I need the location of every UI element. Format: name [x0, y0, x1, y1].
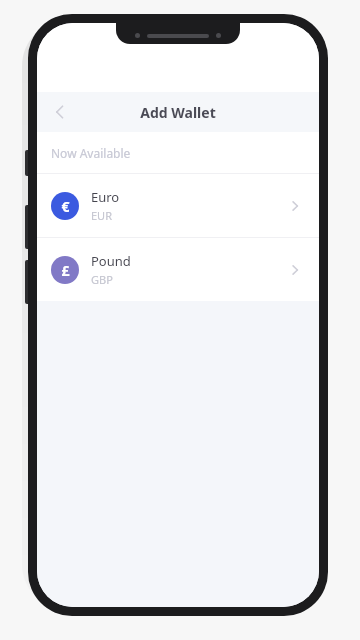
staticText: €	[61, 197, 70, 216]
button[interactable]: €	[37, 174, 319, 237]
staticText: Add Wallet	[140, 103, 216, 122]
staticText: £	[61, 261, 70, 280]
staticText: Now Available	[51, 145, 131, 161]
button[interactable]: £	[37, 238, 319, 301]
staticText: GBP	[91, 272, 113, 287]
staticText: Pound	[91, 252, 131, 270]
staticText: EUR	[91, 208, 112, 223]
staticText: Euro	[91, 188, 120, 206]
button[interactable]: Back	[43, 95, 77, 129]
